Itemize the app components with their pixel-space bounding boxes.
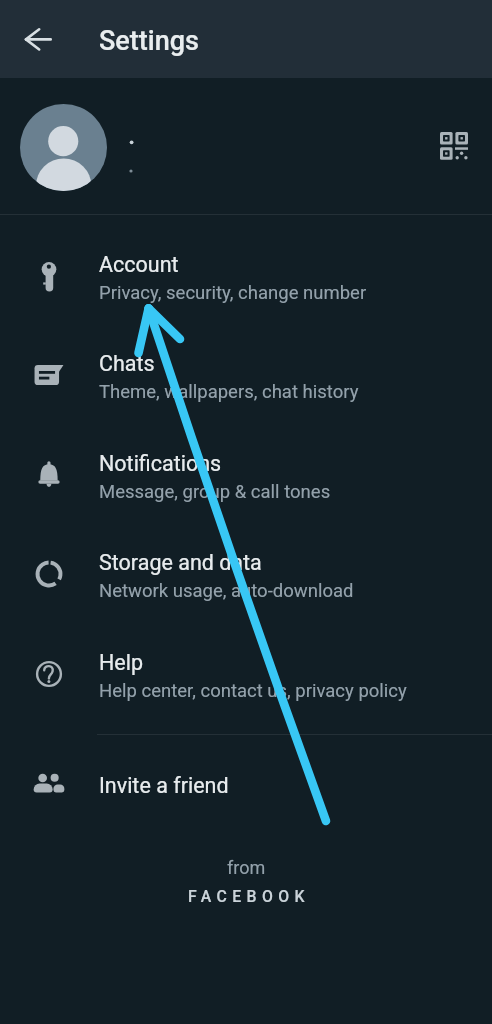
staticText: Account <box>99 252 179 277</box>
button[interactable]: Account <box>0 233 492 332</box>
staticText: Invite a friend <box>99 773 229 798</box>
staticText: Settings <box>99 25 199 57</box>
staticText: Message, group & call tones <box>99 481 331 503</box>
button[interactable]: QR code <box>430 122 478 170</box>
staticText: Notifications <box>99 451 222 476</box>
staticText: Storage and data <box>99 550 262 575</box>
button[interactable]: Notifications <box>0 432 492 531</box>
button[interactable]: Chats <box>0 332 492 431</box>
button[interactable]: QR code <box>0 78 492 214</box>
staticText: Help center, contact us, privacy policy <box>99 680 407 702</box>
button[interactable]: Invite a friend <box>0 754 492 832</box>
button[interactable]: Help <box>0 631 492 730</box>
staticText: Chats <box>99 351 155 376</box>
staticText: FACEBOOK <box>188 887 310 906</box>
button[interactable]: Storage and data <box>0 531 492 630</box>
staticText: from <box>227 857 266 878</box>
staticText: Privacy, security, change number <box>99 282 367 304</box>
staticText: Help <box>99 650 144 675</box>
staticText: Network usage, auto-download <box>99 580 354 602</box>
staticText: Theme, wallpapers, chat history <box>99 381 359 403</box>
button[interactable]: Back <box>16 19 56 59</box>
